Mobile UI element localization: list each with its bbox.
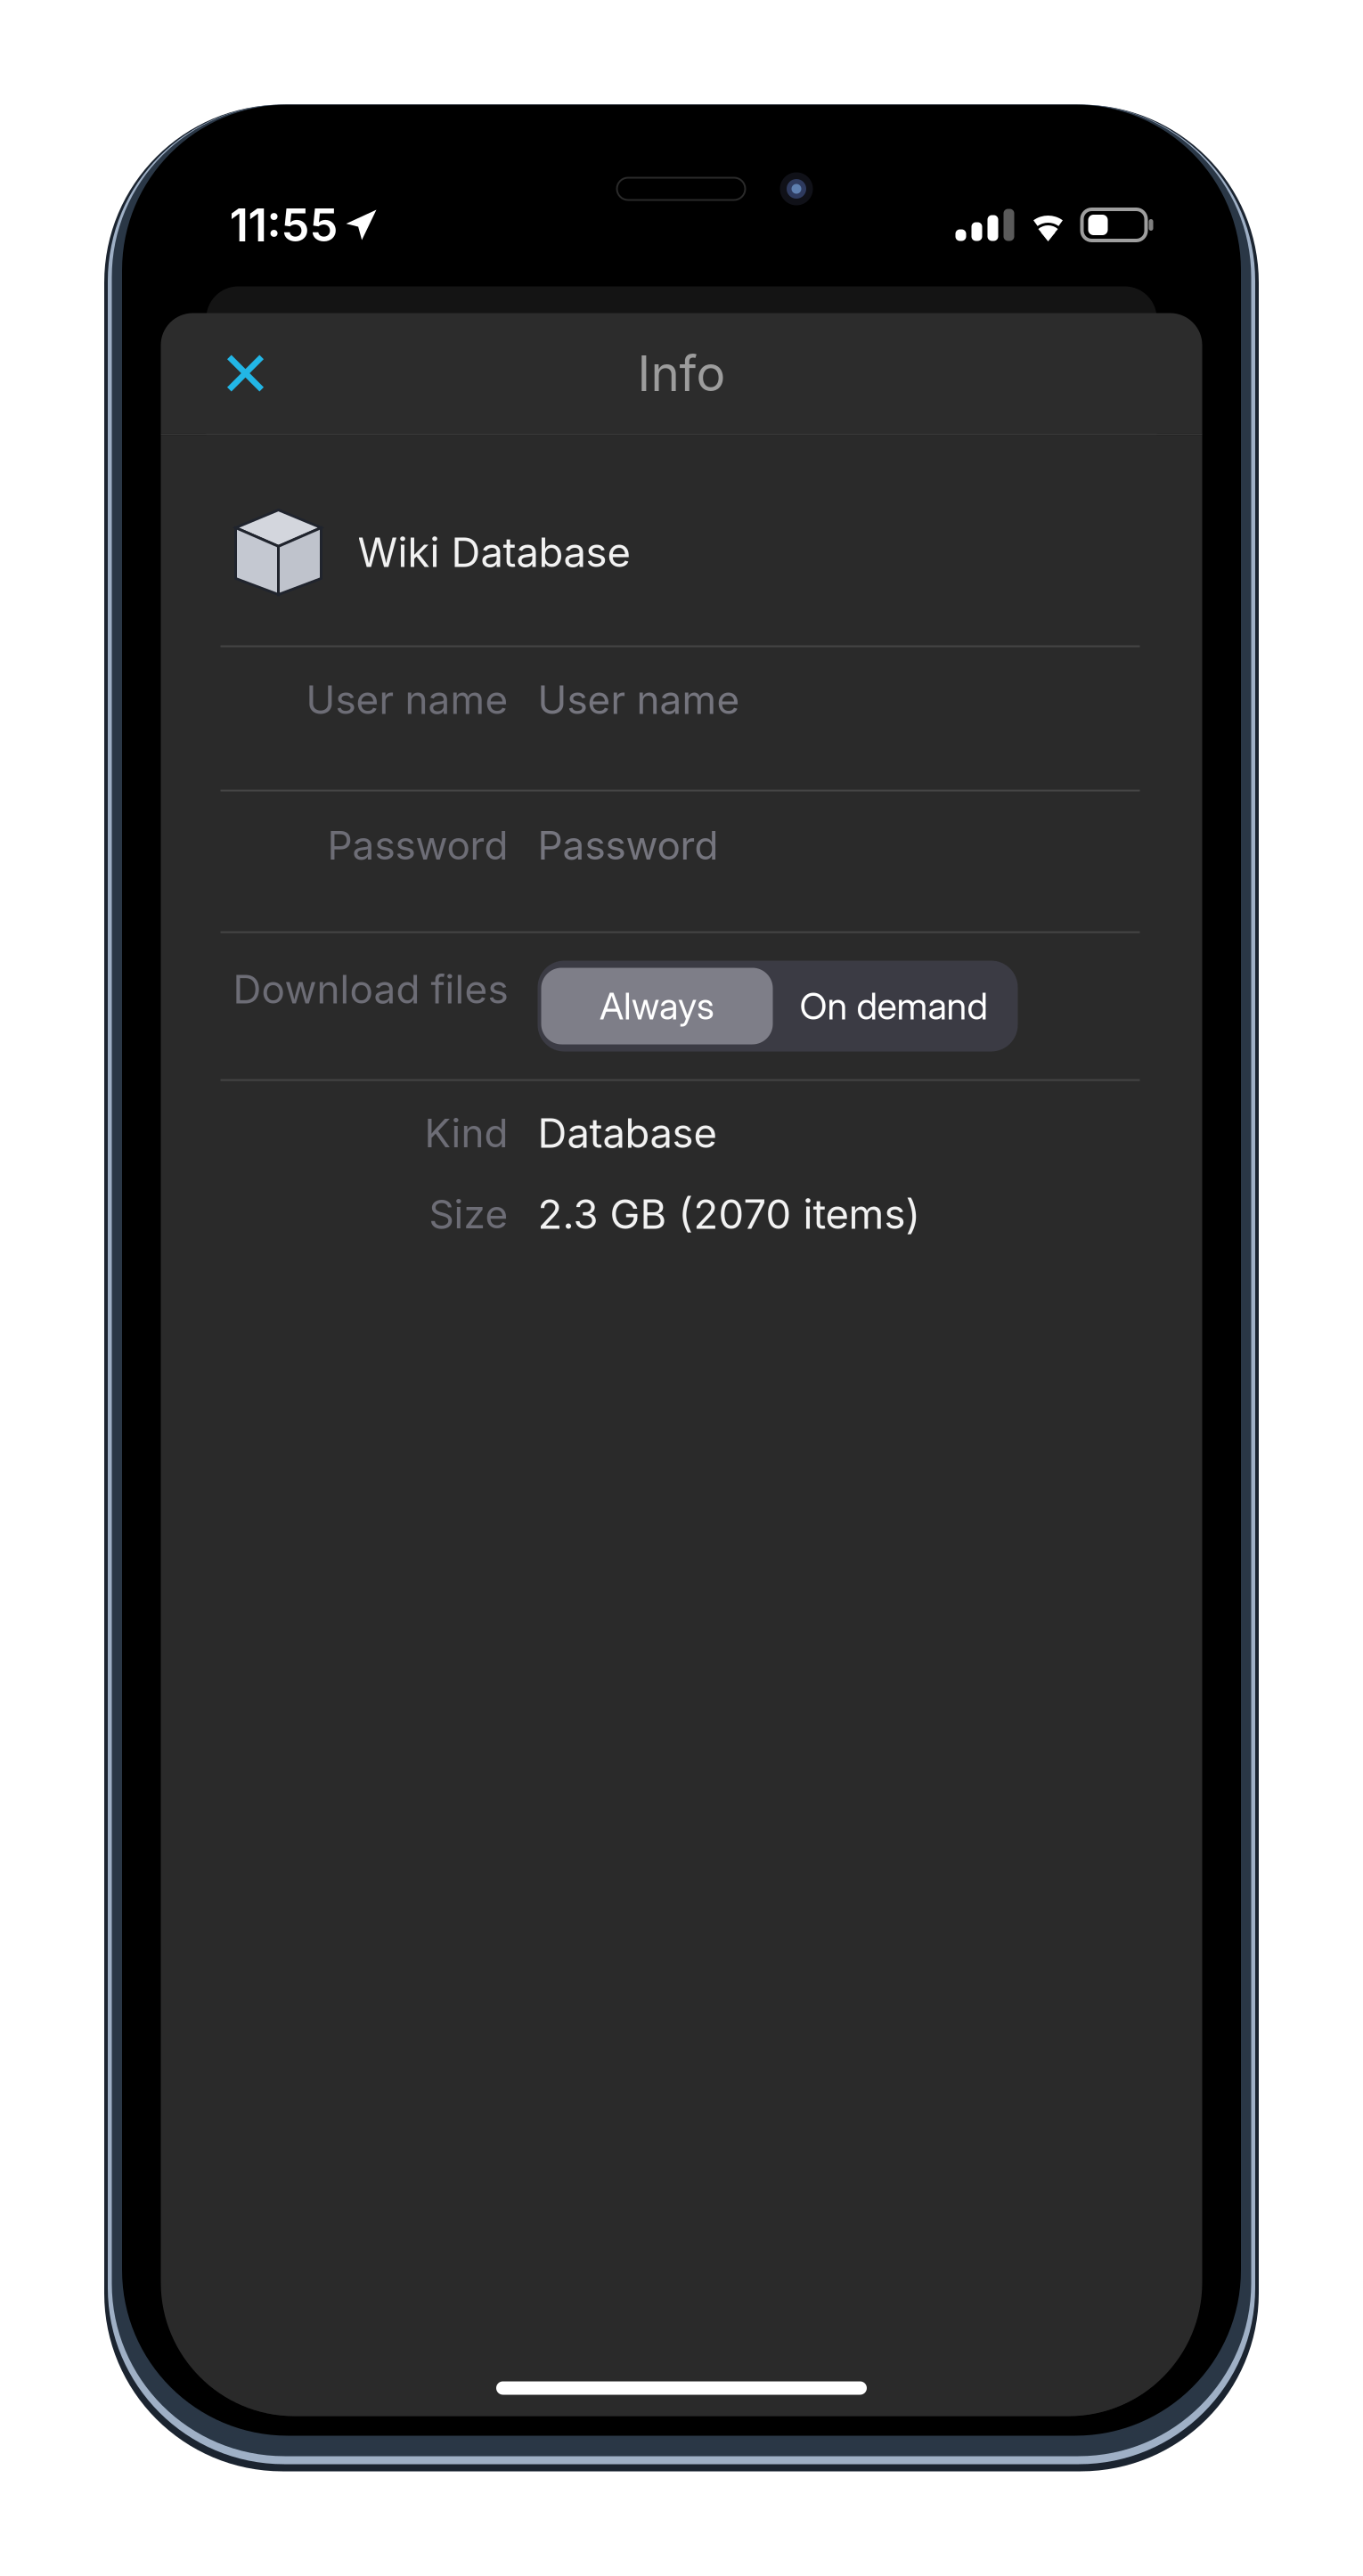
staticText: Password [538,822,718,869]
staticText: On demand [800,984,988,1028]
staticText: 2.3 GB (2070 items) [538,1190,921,1239]
staticText: Wiki Database [358,528,630,577]
staticText: User name [306,676,508,723]
button[interactable]: Always [538,961,773,1052]
staticText: 11:55 [229,198,338,252]
staticText: Size [429,1190,508,1238]
staticText: Kind [424,1109,508,1157]
staticText: Info [637,344,726,403]
staticText: User name [538,676,740,723]
button[interactable]: On demand [773,961,1014,1052]
staticText: Database [538,1109,717,1158]
button[interactable]: Close [196,324,294,422]
staticText: Always [600,984,714,1028]
staticText: Password [327,822,508,869]
staticText: Download files [233,965,508,1013]
